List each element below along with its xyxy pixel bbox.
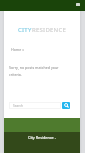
- staticText: Search: [13, 104, 24, 108]
- staticText: RESIDENCE: [32, 26, 67, 34]
- staticText: CITY: [18, 26, 32, 34]
- staticText: City Residence -: [28, 135, 56, 140]
- button[interactable]: City Residence -: [4, 132, 80, 153]
- button[interactable]: Menu: [76, 3, 80, 6]
- staticText: Home »: [11, 47, 24, 52]
- button[interactable]: Search: [9, 102, 61, 109]
- staticText: Sorry, no posts matched your criteria.: [9, 65, 62, 77]
- button[interactable]: Search: [62, 102, 70, 109]
